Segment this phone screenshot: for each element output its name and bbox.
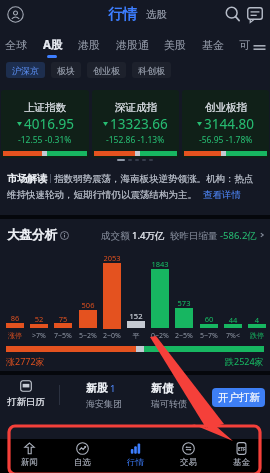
staticText: 查看详情 [203,189,241,201]
button[interactable]: 创业板指 [182,90,269,158]
button[interactable]: 交易 [162,442,215,468]
staticText: 4016.95 [24,115,74,133]
button[interactable]: 美股 [164,38,186,52]
staticText: A股 [43,37,63,53]
staticText: 行情 [108,5,137,23]
button[interactable]: 深证成指 [92,90,179,158]
staticText: 573 [175,298,193,308]
staticText: 75 [54,314,72,324]
button[interactable]: Messages [244,3,266,25]
staticText: 5~2% [77,331,99,341]
staticText: 指数弱势震荡，海南板块逆势领涨。机构：热点 [54,173,254,185]
staticText: 基金 [233,457,250,468]
button[interactable]: 开户打新 [212,388,265,407]
staticText: 7~5% [52,331,74,341]
button[interactable]: 打新日历 [6,380,46,408]
button[interactable]: 沪深京 [6,62,45,78]
staticText: 港股通 [116,38,149,52]
button[interactable]: 创业板 [87,62,126,78]
staticText: 瑞可转债 [151,398,187,409]
staticText: 2053 [103,253,121,263]
button[interactable]: 新股 [86,381,122,409]
button[interactable]: More tabs [253,41,266,54]
staticText: 跌2524家 [225,355,264,367]
button[interactable]: 新债 [151,381,187,409]
button[interactable]: 科创板 [132,62,171,78]
button[interactable]: 自选 [56,442,109,468]
staticText: 2~0% [101,331,123,341]
staticText: 86 [6,313,24,323]
button[interactable]: 基金 [202,38,224,52]
staticText: 0~2% [149,331,171,341]
staticText: 海安集团 [86,398,122,409]
staticText: 交易 [180,457,197,468]
button[interactable]: ETF [215,442,268,468]
staticText: 维持快速轮动，短期行情仍以震荡结构为主。 [7,189,197,201]
staticText: 5~7% [198,331,220,341]
staticText: 3144.80 [204,115,254,133]
staticText: 1843 [151,259,169,269]
button[interactable]: 可 [239,38,250,52]
staticText: 涨停 [4,331,26,340]
staticText: -56.95 -1.78% [199,134,253,146]
staticText: 涨2772家 [6,355,45,367]
staticText: 4 [248,315,266,325]
staticText: -586.2亿 [220,229,257,242]
button[interactable]: 板块 [51,62,81,78]
staticText: 科创板 [138,65,165,76]
staticText: 较昨日缩量 [170,229,220,242]
staticText: -152.86 -1.13% [106,134,165,146]
staticText: 港股 [78,38,100,52]
staticText: 新股 [86,381,108,395]
staticText: 全球 [5,38,27,52]
button[interactable]: 行情 [108,5,137,23]
staticText: 深证成指 [115,101,157,114]
button[interactable]: 上证指数 [1,90,89,158]
button[interactable]: 全球 [5,38,27,52]
staticText: 44 [224,315,242,325]
staticText: -12.55 -0.31% [18,134,72,146]
staticText: 创业板指 [205,101,247,114]
staticText: 1 [110,382,116,395]
staticText: 沪深京 [12,65,39,76]
staticText: 13323.66 [110,115,168,133]
staticText: 上证指数 [24,101,66,114]
staticText: 打新日历 [7,396,45,408]
staticText: 60 [200,314,218,324]
staticText: 自选 [74,457,91,468]
staticText: 2~5% [173,331,195,341]
button[interactable]: Search [222,3,244,25]
staticText: 创业板 [93,65,120,76]
button[interactable]: Account [7,6,24,23]
staticText: 美股 [164,38,186,52]
staticText: 152 [127,311,145,321]
staticText: 平 [125,331,147,340]
button[interactable]: 港股 [78,38,100,52]
staticText: ETF [238,446,246,452]
staticText: 1.4万亿 [132,229,165,242]
staticText: 新闻 [21,457,38,468]
staticText: 大盘分析 [7,227,57,243]
button[interactable]: 选股 [146,8,167,23]
staticText: 成交额 [101,229,132,242]
staticText: 52 [30,314,48,324]
button[interactable]: 行情 [109,442,162,468]
staticText: 7%< [222,331,244,341]
staticText: 开户打新 [218,391,260,404]
staticText: 可 [239,38,250,52]
staticText: 基金 [202,38,224,52]
staticText: 选股 [146,8,167,21]
staticText: 506 [79,300,97,310]
staticText: 市场解读 [7,172,47,185]
button[interactable]: 港股通 [116,38,149,52]
button[interactable]: A股 [43,37,63,53]
button[interactable]: 新闻 [2,442,56,468]
staticText: 新债 [151,381,173,395]
staticText: 行情 [127,457,144,468]
button[interactable]: 查看详情 [203,189,241,201]
staticText: 跌停 [246,331,268,340]
staticText: 板块 [57,65,75,76]
staticText: >7% [28,331,50,341]
